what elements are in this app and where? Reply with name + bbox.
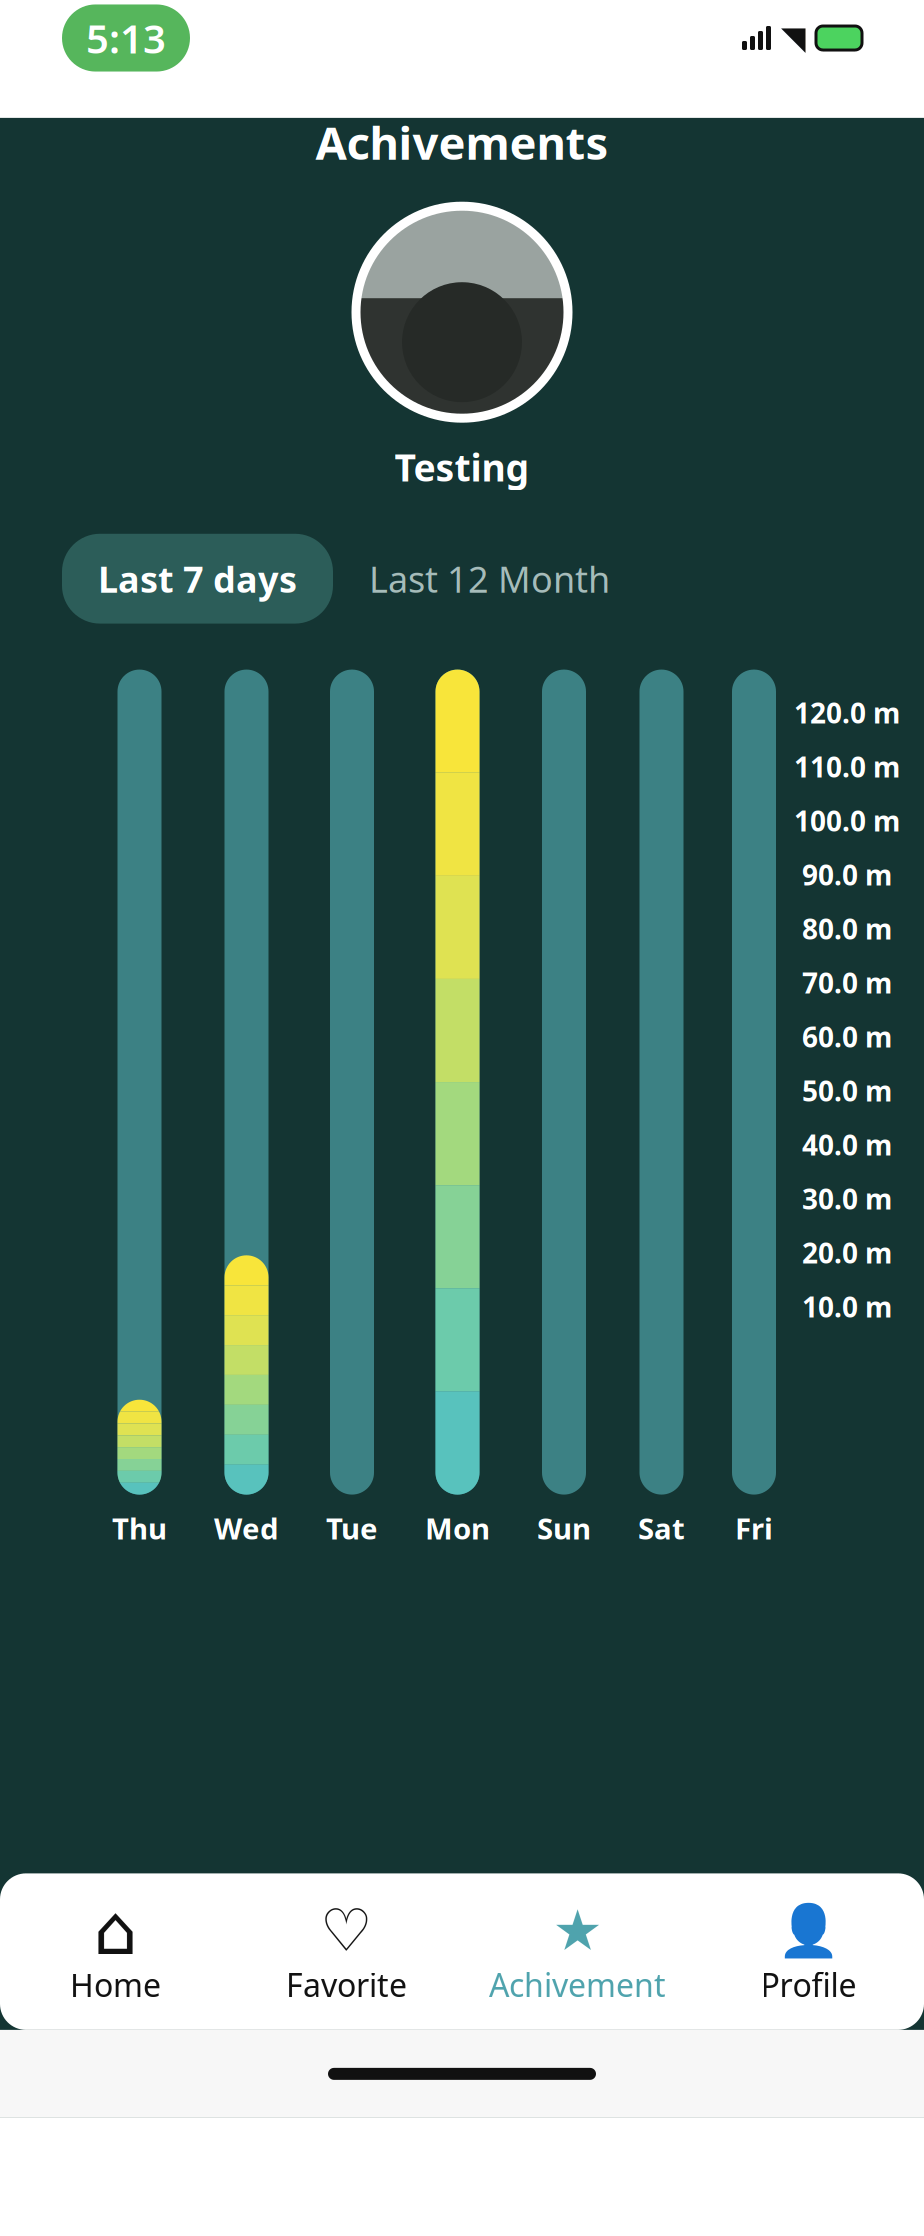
- staticText: Thu: [112, 1509, 167, 1548]
- staticText: 100.0 m: [794, 802, 900, 839]
- staticText: Last 12 Month: [369, 555, 610, 603]
- button[interactable]: Last 7 days: [62, 534, 333, 624]
- staticText: 80.0 m: [802, 910, 892, 947]
- staticText: Wed: [214, 1509, 279, 1548]
- staticText: ⌂: [93, 1891, 137, 1970]
- button[interactable]: Last 12 Month: [333, 534, 646, 624]
- staticText: Tue: [326, 1509, 378, 1548]
- staticText: ★: [552, 1899, 602, 1962]
- staticText: Mon: [425, 1509, 490, 1548]
- staticText: Testing: [394, 442, 529, 492]
- button[interactable]: 👤: [693, 1899, 924, 2014]
- staticText: 👤: [777, 1901, 840, 1959]
- staticText: Achivements: [315, 112, 608, 172]
- staticText: 60.0 m: [802, 1018, 892, 1055]
- staticText: Fri: [735, 1509, 773, 1548]
- staticText: Last 7 days: [98, 555, 297, 603]
- staticText: Home: [70, 1963, 161, 2006]
- staticText: 70.0 m: [802, 964, 892, 1001]
- staticText: 50.0 m: [802, 1072, 892, 1109]
- staticText: Sat: [638, 1509, 685, 1548]
- button[interactable]: ♡: [231, 1899, 462, 2014]
- staticText: 20.0 m: [802, 1234, 892, 1271]
- button[interactable]: ★: [462, 1899, 693, 2014]
- staticText: Profile: [760, 1963, 856, 2006]
- staticText: 110.0 m: [794, 748, 900, 785]
- staticText: ◥: [781, 20, 806, 56]
- staticText: 10.0 m: [802, 1288, 892, 1325]
- staticText: ♡: [320, 1897, 373, 1964]
- staticText: 30.0 m: [802, 1180, 892, 1217]
- staticText: 5:13: [86, 11, 166, 64]
- staticText: Achivement: [489, 1963, 666, 2006]
- staticText: Sun: [537, 1509, 591, 1548]
- staticText: 120.0 m: [794, 694, 900, 731]
- button[interactable]: ⌂: [0, 1899, 231, 2014]
- staticText: Favorite: [286, 1963, 407, 2006]
- staticText: 40.0 m: [802, 1126, 892, 1163]
- staticText: 90.0 m: [802, 856, 892, 893]
